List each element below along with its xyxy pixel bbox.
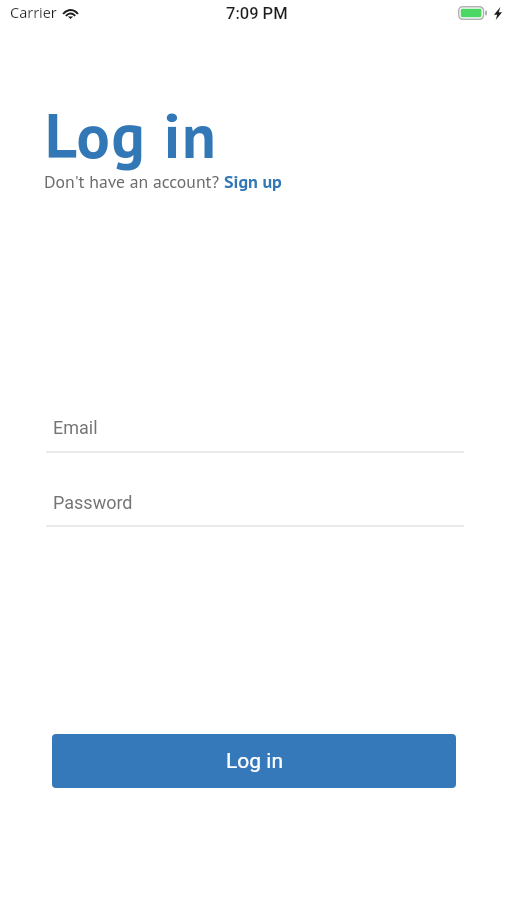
button[interactable] [46,405,464,453]
staticText: Carrier [10,3,57,23]
staticText: Sign up [224,170,282,193]
other: Battery full, charging [458,6,487,20]
button[interactable]: Sign up [224,170,282,193]
staticText: Password [53,492,133,513]
staticText: Log in [226,749,283,774]
button[interactable] [46,480,464,527]
staticText: Log in [45,95,218,175]
staticText: Don't have an account? [44,170,224,193]
button[interactable]: Log in [52,734,456,788]
staticText: 7:09 PM [226,4,288,23]
staticText: Email [53,417,98,438]
other: Wi-Fi signal [61,7,80,19]
